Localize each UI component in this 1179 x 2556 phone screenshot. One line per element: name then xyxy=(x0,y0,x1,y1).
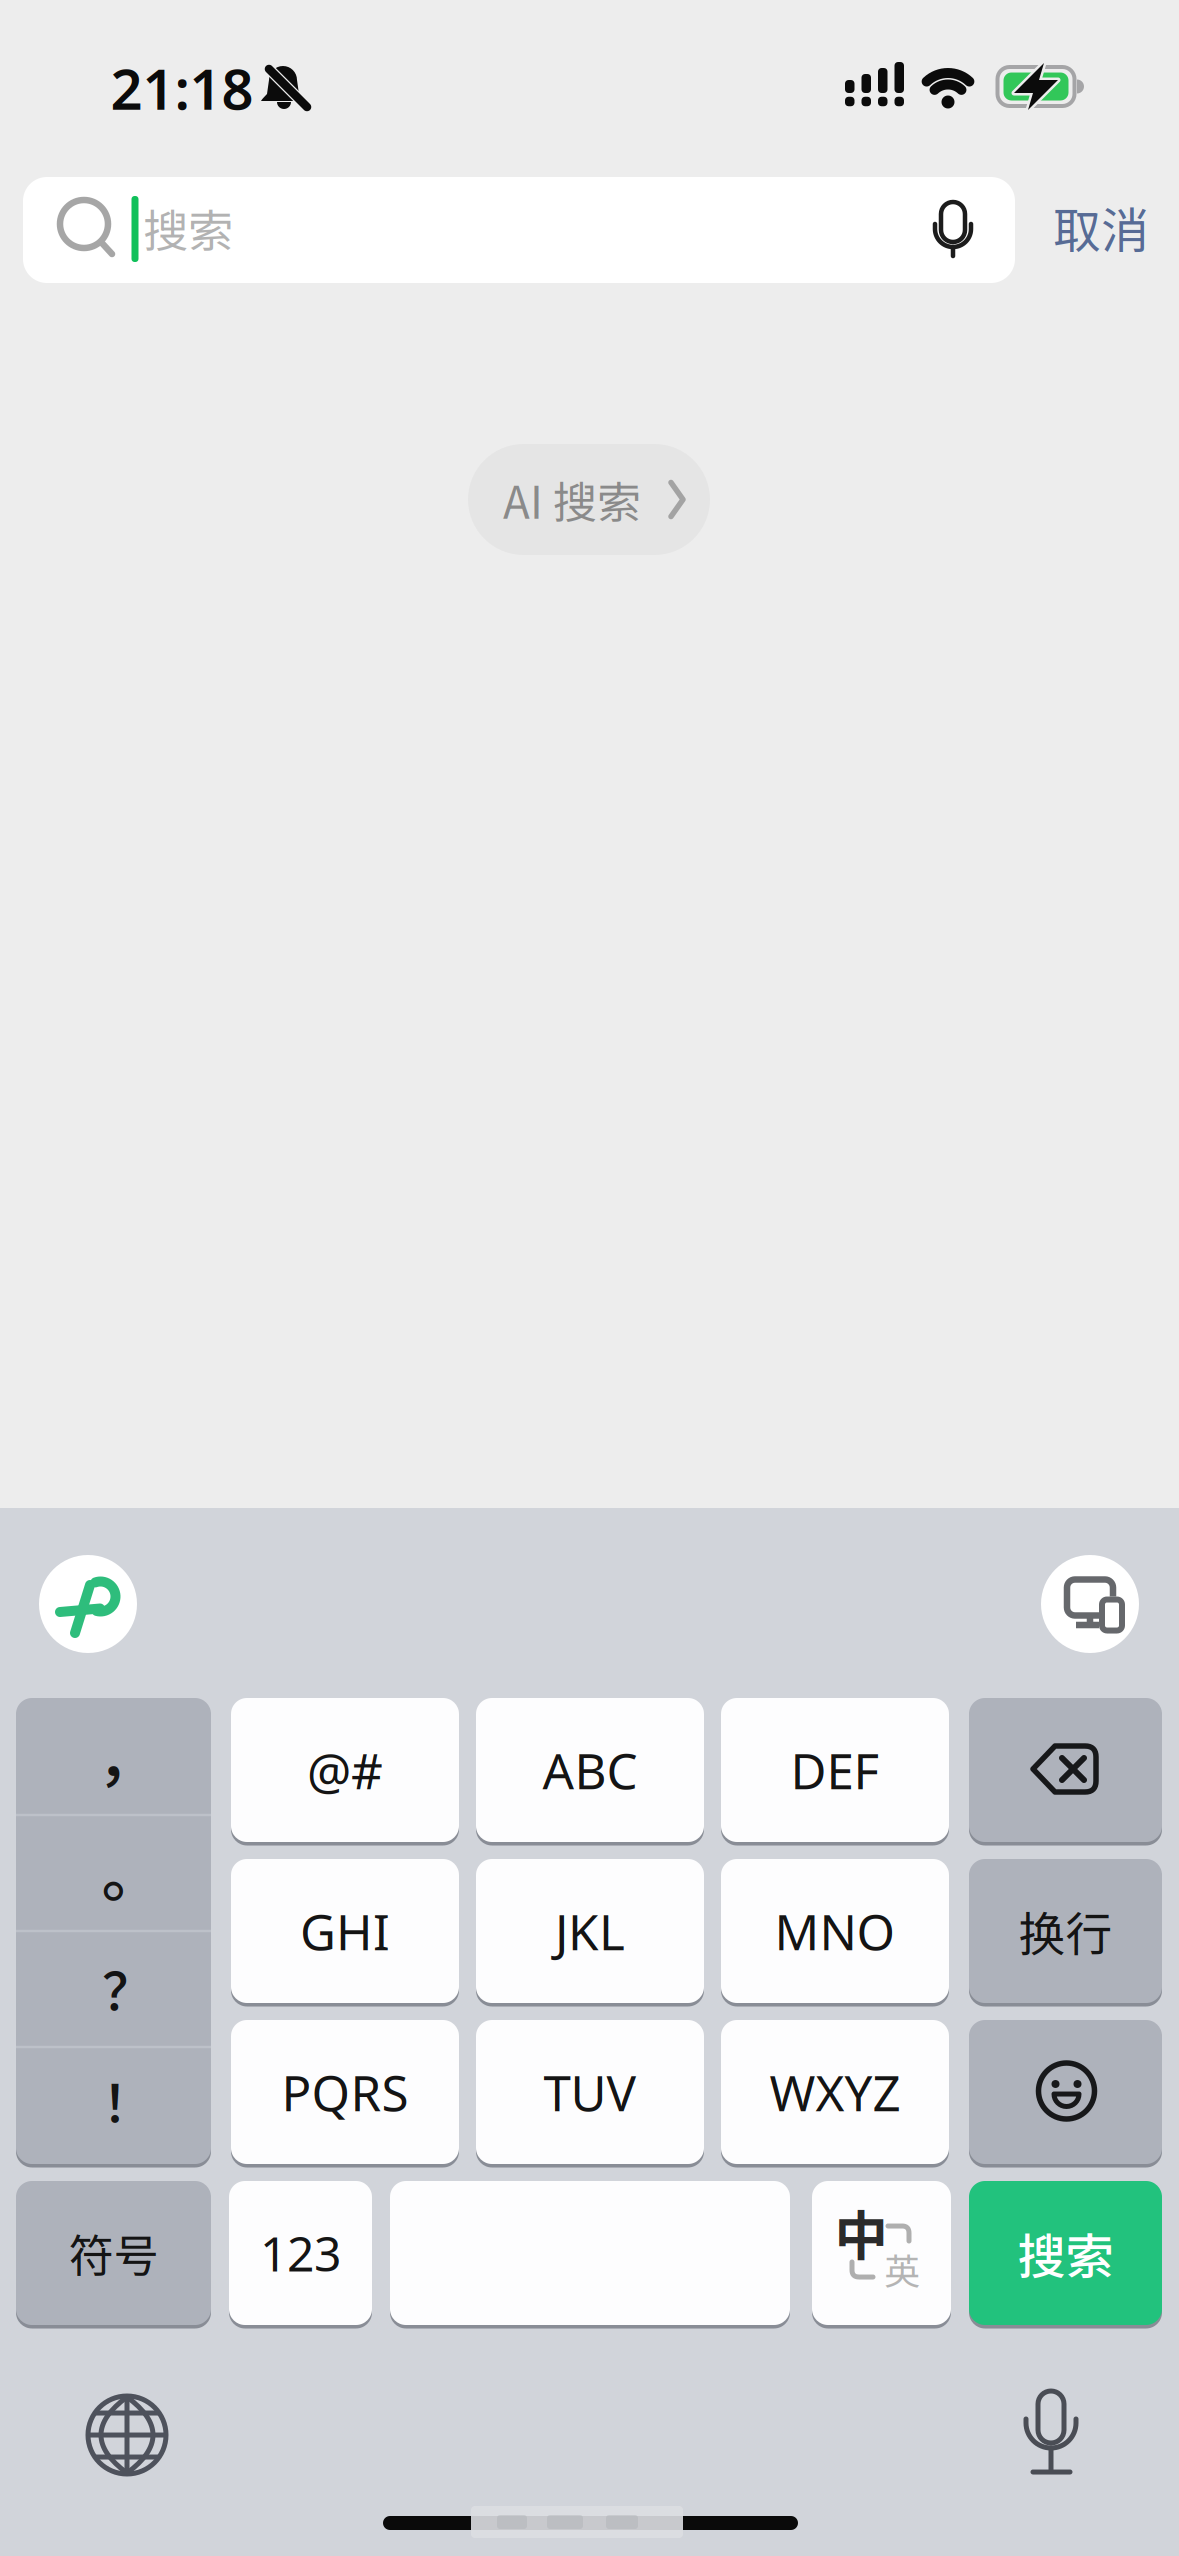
button[interactable]: 123 xyxy=(229,2181,372,2325)
staticText: PQRS xyxy=(281,2059,408,2125)
button[interactable]: 取消 xyxy=(1053,192,1149,262)
button[interactable] xyxy=(1030,1544,1150,1664)
button[interactable]: MNO xyxy=(721,1859,949,2003)
staticText: 中 xyxy=(834,2193,887,2271)
staticText: JKL xyxy=(555,1898,625,1964)
button[interactable] xyxy=(969,2020,1162,2164)
button[interactable]: ， xyxy=(16,1698,211,2164)
staticText: 123 xyxy=(260,2221,341,2285)
button[interactable]: WXYZ xyxy=(721,2020,949,2164)
staticText: 取消 xyxy=(1053,192,1149,262)
staticText: TUV xyxy=(543,2059,636,2125)
button[interactable]: ABC xyxy=(476,1698,704,1842)
staticText: 21:18 xyxy=(110,51,253,125)
staticText: ！ xyxy=(102,2062,154,2138)
staticText: GHI xyxy=(300,1898,390,1964)
button[interactable]: GHI xyxy=(231,1859,459,2003)
button[interactable]: AI 搜索 xyxy=(468,444,710,555)
button[interactable]: 中 xyxy=(812,2181,951,2325)
staticText: AI 搜索 xyxy=(503,468,641,531)
button[interactable] xyxy=(390,2181,790,2325)
button[interactable]: PQRS xyxy=(231,2020,459,2164)
staticText: 换行 xyxy=(1018,1897,1112,1965)
staticText: WXYZ xyxy=(769,2059,900,2125)
button[interactable]: 搜索 xyxy=(969,2181,1162,2325)
button[interactable] xyxy=(991,2371,1111,2491)
button[interactable]: JKL xyxy=(476,1859,704,2003)
staticText: ？ xyxy=(102,1950,154,2026)
staticText: ， xyxy=(97,1710,158,1798)
staticText: ABC xyxy=(542,1737,637,1803)
staticText: 英 xyxy=(884,2243,920,2295)
button[interactable]: 搜索 xyxy=(23,177,1015,283)
button[interactable]: @# xyxy=(231,1698,459,1842)
staticText: 。 xyxy=(101,1826,162,1914)
staticText: 搜索 xyxy=(143,195,233,261)
button[interactable]: DEF xyxy=(721,1698,949,1842)
button[interactable] xyxy=(969,1698,1162,1842)
button[interactable] xyxy=(67,2375,187,2495)
staticText: @# xyxy=(307,1737,383,1803)
button[interactable]: 换行 xyxy=(969,1859,1162,2003)
button[interactable]: TUV xyxy=(476,2020,704,2164)
staticText: 符号 xyxy=(68,2220,158,2286)
button[interactable] xyxy=(28,1544,148,1664)
staticText: 搜索 xyxy=(1017,2218,1113,2288)
staticText: DEF xyxy=(790,1737,879,1803)
button[interactable]: 符号 xyxy=(16,2181,211,2325)
staticText: MNO xyxy=(774,1898,895,1964)
